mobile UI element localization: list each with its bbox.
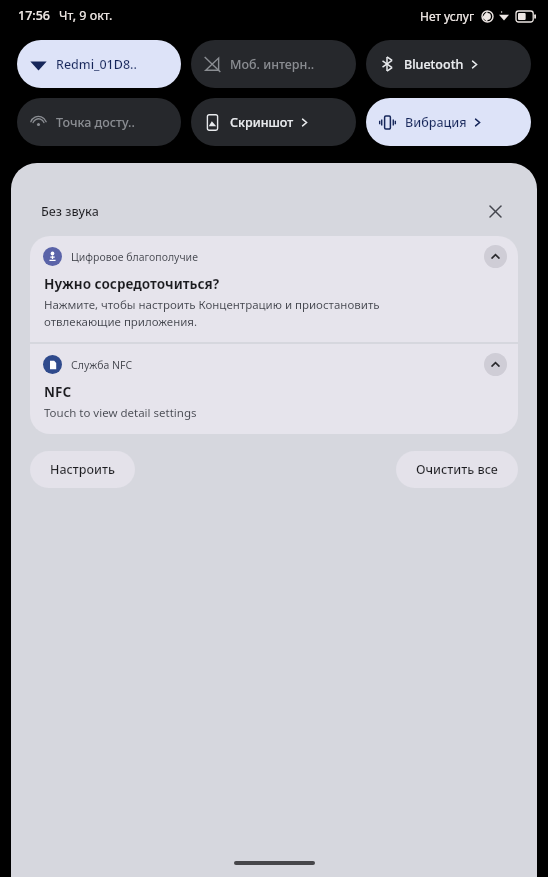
staticText: Служба NFC [71, 358, 133, 372]
button[interactable]: Скриншот [191, 98, 356, 146]
button[interactable]: Моб. интерн.. [191, 40, 356, 88]
button[interactable]: Вибрация [366, 98, 531, 146]
staticText: Точка досту.. [56, 114, 135, 131]
staticText: Чт, 9 окт. [59, 7, 113, 24]
staticText: Без звука [41, 203, 99, 220]
staticText: Redmi_01D8.. [56, 56, 137, 73]
staticText: Очистить все [416, 461, 498, 478]
button[interactable]: Закрыть [483, 199, 507, 223]
staticText: Нажмите, чтобы настроить Концентрацию и … [44, 297, 380, 329]
button[interactable]: Свернуть [484, 353, 507, 376]
staticText: Вибрация [405, 114, 467, 131]
staticText: Нет услуг [420, 8, 475, 24]
button[interactable]: Цифровое благополучие [30, 236, 518, 342]
button[interactable]: Точка досту.. [17, 98, 181, 146]
staticText: Цифровое благополучие [71, 250, 198, 264]
staticText: Скриншот [230, 114, 294, 131]
staticText: 17:56 [18, 7, 51, 24]
button[interactable]: Свернуть [484, 245, 507, 268]
button[interactable]: Очистить все [396, 451, 518, 488]
staticText: Touch to view detail settings [44, 405, 197, 421]
button[interactable]: Служба NFC [30, 344, 518, 434]
button[interactable]: Redmi_01D8.. [17, 40, 181, 88]
staticText: Моб. интерн.. [230, 56, 315, 73]
staticText: Нужно сосредоточиться? [44, 275, 220, 293]
staticText: Bluetooth [404, 56, 464, 73]
button[interactable]: Настроить [30, 451, 135, 488]
staticText: Настроить [50, 461, 115, 478]
staticText: NFC [44, 383, 72, 401]
button[interactable]: Bluetooth [366, 40, 531, 88]
